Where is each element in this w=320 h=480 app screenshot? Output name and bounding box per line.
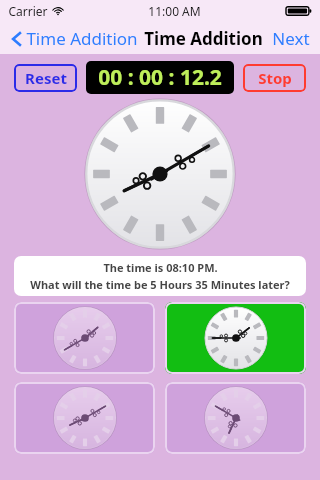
- button[interactable]: Answer clock option: [165, 382, 306, 454]
- button[interactable]: Stop: [243, 64, 306, 92]
- button[interactable]: Answer clock option: [14, 382, 155, 454]
- button[interactable]: The time is 08:10 PM.: [14, 256, 306, 296]
- staticText: 11:00 AM: [148, 3, 201, 19]
- staticText: Carrier: [8, 3, 48, 19]
- staticText: 00 : 00 : 12.2: [98, 63, 222, 92]
- staticText: Next: [272, 27, 310, 50]
- staticText: Time Addition: [26, 27, 138, 50]
- staticText: Stop: [258, 68, 292, 88]
- button[interactable]: Next: [270, 27, 312, 50]
- button[interactable]: Reset: [14, 64, 77, 92]
- button[interactable]: Answer clock option: [165, 302, 306, 374]
- staticText: What will the time be 5 Hours 35 Minutes…: [30, 277, 290, 292]
- staticText: The time is 08:10 PM.: [103, 260, 218, 275]
- button[interactable]: Time Addition: [8, 27, 140, 50]
- staticText: Reset: [25, 68, 67, 88]
- button[interactable]: Answer clock option: [14, 302, 155, 374]
- staticText: Time Addition: [144, 27, 263, 50]
